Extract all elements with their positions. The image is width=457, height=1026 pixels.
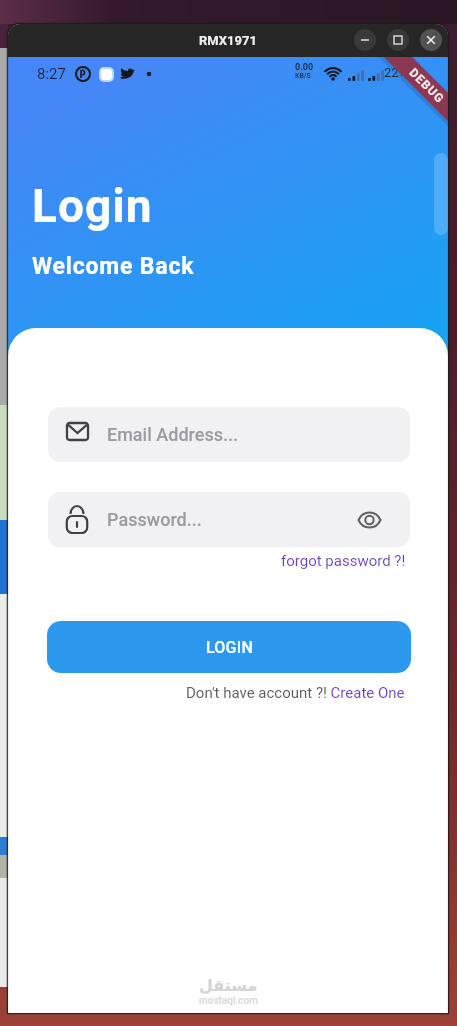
staticText: مستقل — [199, 976, 258, 995]
button[interactable]: Don't have account ?! Create One — [8, 684, 405, 702]
button[interactable] — [420, 29, 442, 51]
button[interactable]: Password... — [48, 492, 410, 547]
staticText: Password... — [107, 509, 202, 530]
staticText: Login — [32, 179, 153, 233]
button[interactable] — [354, 29, 376, 51]
staticText: 8:27 — [37, 65, 66, 83]
staticText: Don't have account ?! Create One — [186, 684, 405, 702]
staticText: 22% — [384, 65, 409, 80]
staticText: Welcome Back — [32, 253, 195, 280]
button[interactable] — [387, 29, 409, 51]
button[interactable]: Email Address... — [48, 407, 410, 462]
staticText: mostaql.com — [199, 995, 258, 1007]
staticText: RMX1971 — [199, 33, 257, 48]
staticText: Email Address... — [107, 424, 239, 445]
button[interactable]: forgot password ?! — [8, 552, 406, 570]
button[interactable]: LOGIN — [47, 621, 411, 673]
staticText: LOGIN — [206, 638, 253, 657]
staticText: KB/S — [295, 72, 311, 80]
staticText: 0.00 — [295, 62, 314, 73]
staticText: forgot password ?! — [281, 552, 406, 570]
staticText: DEBUG — [406, 65, 447, 106]
